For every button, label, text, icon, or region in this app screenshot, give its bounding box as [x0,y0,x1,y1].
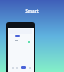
button[interactable]: Primary action [15,35,20,37]
staticText: Smart [25,8,39,14]
button[interactable]: Wallet tab [21,66,26,69]
staticText: digital wallet [25,11,39,14]
